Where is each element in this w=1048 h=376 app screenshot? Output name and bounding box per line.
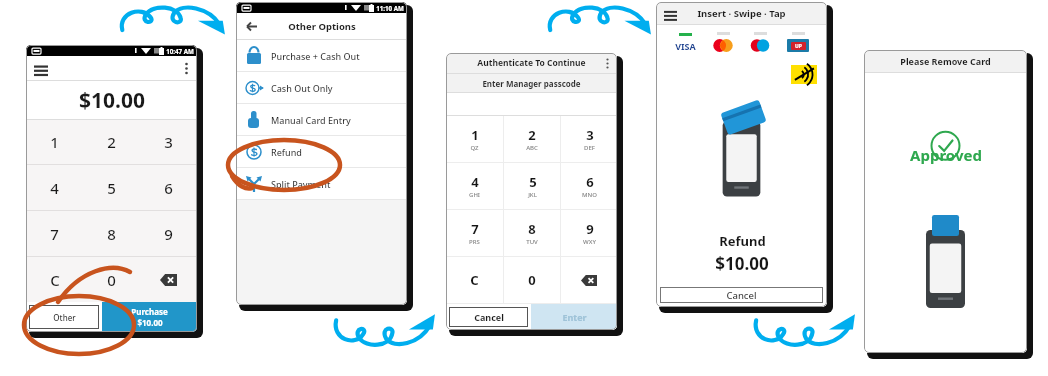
button[interactable]: Split Payment (236, 168, 407, 199)
staticText: Other (53, 312, 76, 323)
staticText: Please Remove Card (900, 55, 991, 67)
button[interactable]: Cash Out Only (236, 72, 407, 103)
button[interactable]: Other (29, 305, 99, 329)
staticText: ABC (526, 144, 538, 152)
button[interactable]: 7 (26, 211, 83, 256)
button[interactable]: 6 (561, 163, 617, 209)
staticText: VISA (675, 40, 696, 52)
button[interactable]: 1 (446, 116, 503, 162)
button[interactable]: Menu (26, 56, 197, 80)
staticText: Enter (562, 311, 587, 323)
button[interactable]: 0 (504, 257, 560, 303)
staticText: Enter Manager passcode (482, 78, 581, 89)
button[interactable]: 5 (504, 163, 560, 209)
staticText: $10.00 (137, 317, 163, 328)
button[interactable]: Enter (531, 304, 617, 330)
button[interactable]: 4 (26, 165, 83, 210)
button[interactable]: 2 (504, 116, 560, 162)
button[interactable]: Back (236, 13, 407, 39)
other: Contactless (791, 65, 817, 84)
staticText: 7 (471, 220, 479, 238)
button[interactable]: Cancel (660, 287, 823, 303)
staticText: Refund (271, 146, 302, 158)
staticText: 8 (107, 224, 116, 244)
button[interactable]: Delete (561, 257, 617, 303)
button[interactable]: Menu (656, 2, 827, 24)
button[interactable]: C (446, 257, 503, 303)
staticText: C (50, 270, 60, 290)
staticText: 4 (50, 178, 59, 198)
button[interactable]: 8 (83, 211, 140, 256)
staticText: 10:47 AM (166, 47, 194, 55)
staticText: 5 (107, 178, 116, 198)
button[interactable]: 7 (446, 210, 503, 256)
button[interactable]: 9 (140, 211, 197, 256)
staticText: C (470, 271, 479, 289)
button[interactable]: Delete (140, 257, 197, 302)
other: Delete (581, 275, 597, 286)
button[interactable]: Refund (236, 136, 407, 167)
staticText: 3 (164, 132, 173, 152)
staticText: Purchase (131, 306, 168, 317)
staticText: DEF (584, 144, 595, 152)
staticText: Manual Card Entry (271, 114, 351, 126)
staticText: 4 (471, 173, 479, 191)
button[interactable]: 9 (561, 210, 617, 256)
staticText: Cancel (474, 311, 504, 323)
staticText: Other Options (288, 20, 356, 33)
other: Menu (34, 61, 48, 75)
staticText: 3 (586, 126, 594, 144)
staticText: PRS (469, 238, 480, 246)
staticText: QZ (470, 144, 479, 152)
staticText: Insert · Swipe · Tap (697, 7, 786, 20)
staticText: 5 (529, 173, 537, 191)
staticText: 7 (50, 224, 59, 244)
staticText: 0 (528, 271, 536, 289)
staticText: Authenticate To Continue (477, 57, 586, 69)
staticText: Approved (910, 145, 982, 165)
button[interactable]: 0 (83, 257, 140, 302)
button[interactable]: 3 (140, 120, 197, 164)
staticText: $10.00 (715, 252, 769, 275)
staticText: TUV (526, 238, 538, 246)
button[interactable]: 4 (446, 163, 503, 209)
staticText: JKL (528, 191, 537, 199)
button[interactable]: 5 (83, 165, 140, 210)
button[interactable]: Purchase (102, 302, 197, 332)
button[interactable]: 3 (561, 116, 617, 162)
staticText: Refund (719, 232, 766, 250)
staticText: 6 (586, 173, 594, 191)
button[interactable]: 1 (26, 120, 83, 164)
other: More options (606, 58, 609, 69)
staticText: 6 (164, 178, 173, 198)
other: Back (246, 21, 257, 32)
staticText: WXY (583, 238, 596, 246)
other: More options (185, 62, 188, 75)
staticText: GHI (469, 191, 480, 199)
other: Delete (160, 274, 177, 286)
staticText: $10.00 (79, 86, 145, 115)
staticText: Split Payment (271, 178, 331, 190)
staticText: Cash Out Only (271, 82, 333, 94)
staticText: 9 (164, 224, 173, 244)
other: Menu (664, 7, 677, 20)
button[interactable]: Manual Card Entry (236, 104, 407, 135)
staticText: MNO (582, 191, 597, 199)
staticText: 2 (528, 126, 536, 144)
button[interactable]: 6 (140, 165, 197, 210)
staticText: 2 (107, 132, 116, 152)
button[interactable]: 8 (504, 210, 560, 256)
staticText: 8 (528, 220, 536, 238)
staticText: 11:10 AM (376, 4, 404, 12)
staticText: Cancel (726, 289, 757, 302)
button[interactable]: Cancel (449, 307, 528, 327)
staticText: 1 (471, 126, 479, 144)
staticText: 1 (50, 132, 59, 152)
button[interactable]: Purchase + Cash Out (236, 40, 407, 71)
staticText: 9 (586, 220, 594, 238)
button[interactable]: 2 (83, 120, 140, 164)
button[interactable]: C (26, 257, 83, 302)
staticText: Purchase + Cash Out (271, 50, 360, 62)
staticText: 0 (107, 270, 116, 290)
staticText: UP (795, 43, 802, 50)
